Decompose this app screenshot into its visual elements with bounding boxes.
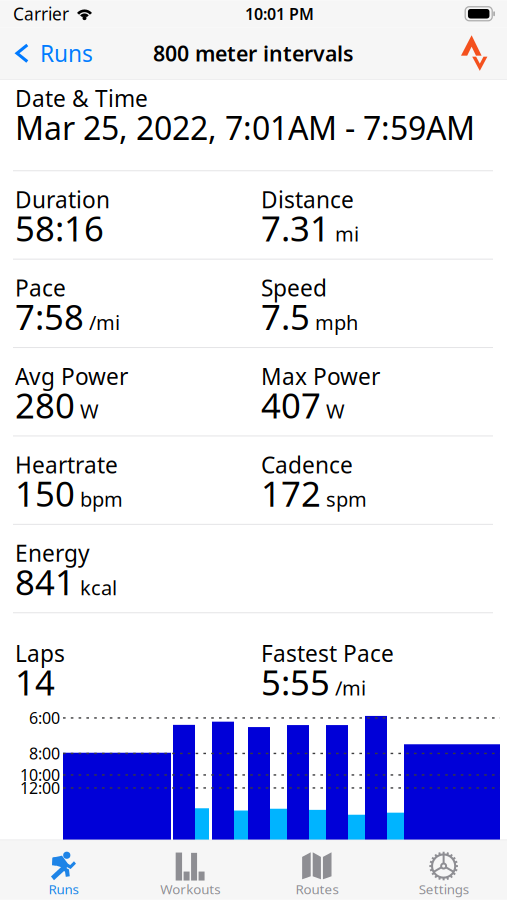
staticText: 12:00 xyxy=(20,777,60,798)
staticText: bpm xyxy=(80,486,123,512)
staticText: kcal xyxy=(80,574,117,601)
staticText: 7:58 xyxy=(15,294,84,340)
staticText: 7.5 xyxy=(261,294,310,340)
staticText: 150 xyxy=(15,470,75,516)
staticText: 5:55 xyxy=(261,659,330,705)
staticText: Fastest Pace xyxy=(261,638,394,668)
staticText: 8:00 xyxy=(29,743,60,764)
staticText: Pace xyxy=(15,273,66,303)
staticText: Speed xyxy=(261,273,327,303)
staticText: Energy xyxy=(15,538,90,568)
button[interactable]: Runs xyxy=(0,840,127,900)
button[interactable]: Settings xyxy=(380,840,507,900)
staticText: mph xyxy=(315,309,358,336)
staticText: W xyxy=(80,397,99,424)
button[interactable]: Routes xyxy=(253,840,380,900)
staticText: Runs xyxy=(48,880,78,898)
staticText: 10:00 xyxy=(20,764,60,785)
staticText: 7.31 xyxy=(261,205,330,251)
staticText: Date & Time xyxy=(15,83,148,113)
staticText: 6:00 xyxy=(29,707,60,728)
staticText: /mi xyxy=(335,674,366,701)
staticText: Settings xyxy=(419,880,469,898)
staticText: Routes xyxy=(295,880,338,898)
button[interactable]: Workouts xyxy=(127,840,254,900)
staticText: W xyxy=(326,397,345,424)
button[interactable]: Strava xyxy=(447,27,507,79)
staticText: Carrier xyxy=(13,2,69,25)
staticText: 280 xyxy=(15,382,75,428)
staticText: 172 xyxy=(261,470,321,516)
staticText: /mi xyxy=(89,309,120,336)
staticText: 841 xyxy=(15,559,75,605)
staticText: Laps xyxy=(15,638,65,668)
staticText: Runs xyxy=(40,38,93,68)
staticText: Mar 25, 2022, 7:01AM - 7:59AM xyxy=(15,106,475,149)
staticText: 58:16 xyxy=(15,205,104,251)
staticText: Distance xyxy=(261,184,354,214)
staticText: Heartrate xyxy=(15,450,118,480)
staticText: 800 meter intervals xyxy=(153,39,354,67)
staticText: mi xyxy=(335,221,359,247)
staticText: Duration xyxy=(15,184,110,214)
staticText: 407 xyxy=(261,382,321,428)
staticText: Cadence xyxy=(261,450,353,480)
staticText: Max Power xyxy=(261,361,380,391)
staticText: Avg Power xyxy=(15,361,128,391)
staticText: Workouts xyxy=(160,880,220,898)
button[interactable]: Runs xyxy=(0,27,103,79)
staticText: 14 xyxy=(15,659,55,705)
staticText: 10:01 PM xyxy=(245,3,314,24)
staticText: spm xyxy=(326,486,367,512)
